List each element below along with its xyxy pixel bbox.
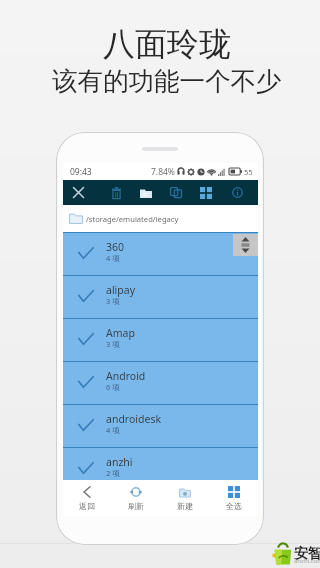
button[interactable]: Move to folder — [132, 180, 160, 205]
staticText: anzhi.com — [294, 557, 320, 565]
staticText: /storage/emulated/legacy — [86, 214, 179, 224]
staticText: 7.84% — [151, 166, 175, 178]
button[interactable]: Amap — [63, 319, 258, 361]
staticText: 安智 — [294, 545, 320, 563]
staticText: androidesk — [106, 412, 162, 426]
button[interactable]: anzhi — [63, 448, 258, 480]
button[interactable]: alipay — [63, 276, 258, 318]
staticText: 3 项 — [106, 339, 120, 349]
button[interactable]: Scroll — [233, 234, 258, 256]
staticText: alipay — [106, 283, 136, 297]
button[interactable]: Delete — [102, 180, 130, 205]
button[interactable]: Close — [64, 180, 92, 205]
button[interactable]: Android — [63, 362, 258, 404]
button[interactable]: Grid view — [192, 180, 220, 205]
staticText: 360 — [106, 240, 125, 254]
staticText: 八面玲珑 — [103, 24, 231, 64]
staticText: 全选 — [226, 501, 242, 511]
staticText: 新建 — [177, 501, 193, 511]
staticText: Amap — [106, 326, 135, 340]
staticText: 6 项 — [106, 382, 120, 392]
staticText: 09:43 — [70, 166, 92, 178]
staticText: anzhi — [106, 455, 133, 469]
staticText: 返回 — [79, 501, 95, 511]
button[interactable]: 360 — [63, 233, 258, 275]
staticText: 4 项 — [106, 253, 120, 263]
button[interactable]: 新建 — [160, 480, 209, 516]
button[interactable]: 刷新 — [111, 480, 160, 516]
staticText: Android — [106, 369, 146, 383]
button[interactable]: Info — [223, 180, 251, 205]
staticText: 刷新 — [128, 501, 144, 511]
button[interactable]: 返回 — [63, 480, 111, 516]
staticText: 3 项 — [106, 296, 120, 306]
staticText: 4 项 — [106, 425, 120, 435]
button[interactable]: androidesk — [63, 405, 258, 447]
button[interactable]: 全选 — [209, 480, 258, 516]
staticText: 2 项 — [106, 468, 120, 478]
staticText: 55 — [244, 167, 253, 177]
button[interactable]: Copy — [162, 180, 190, 205]
staticText: 该有的功能一个不少 — [52, 65, 282, 97]
